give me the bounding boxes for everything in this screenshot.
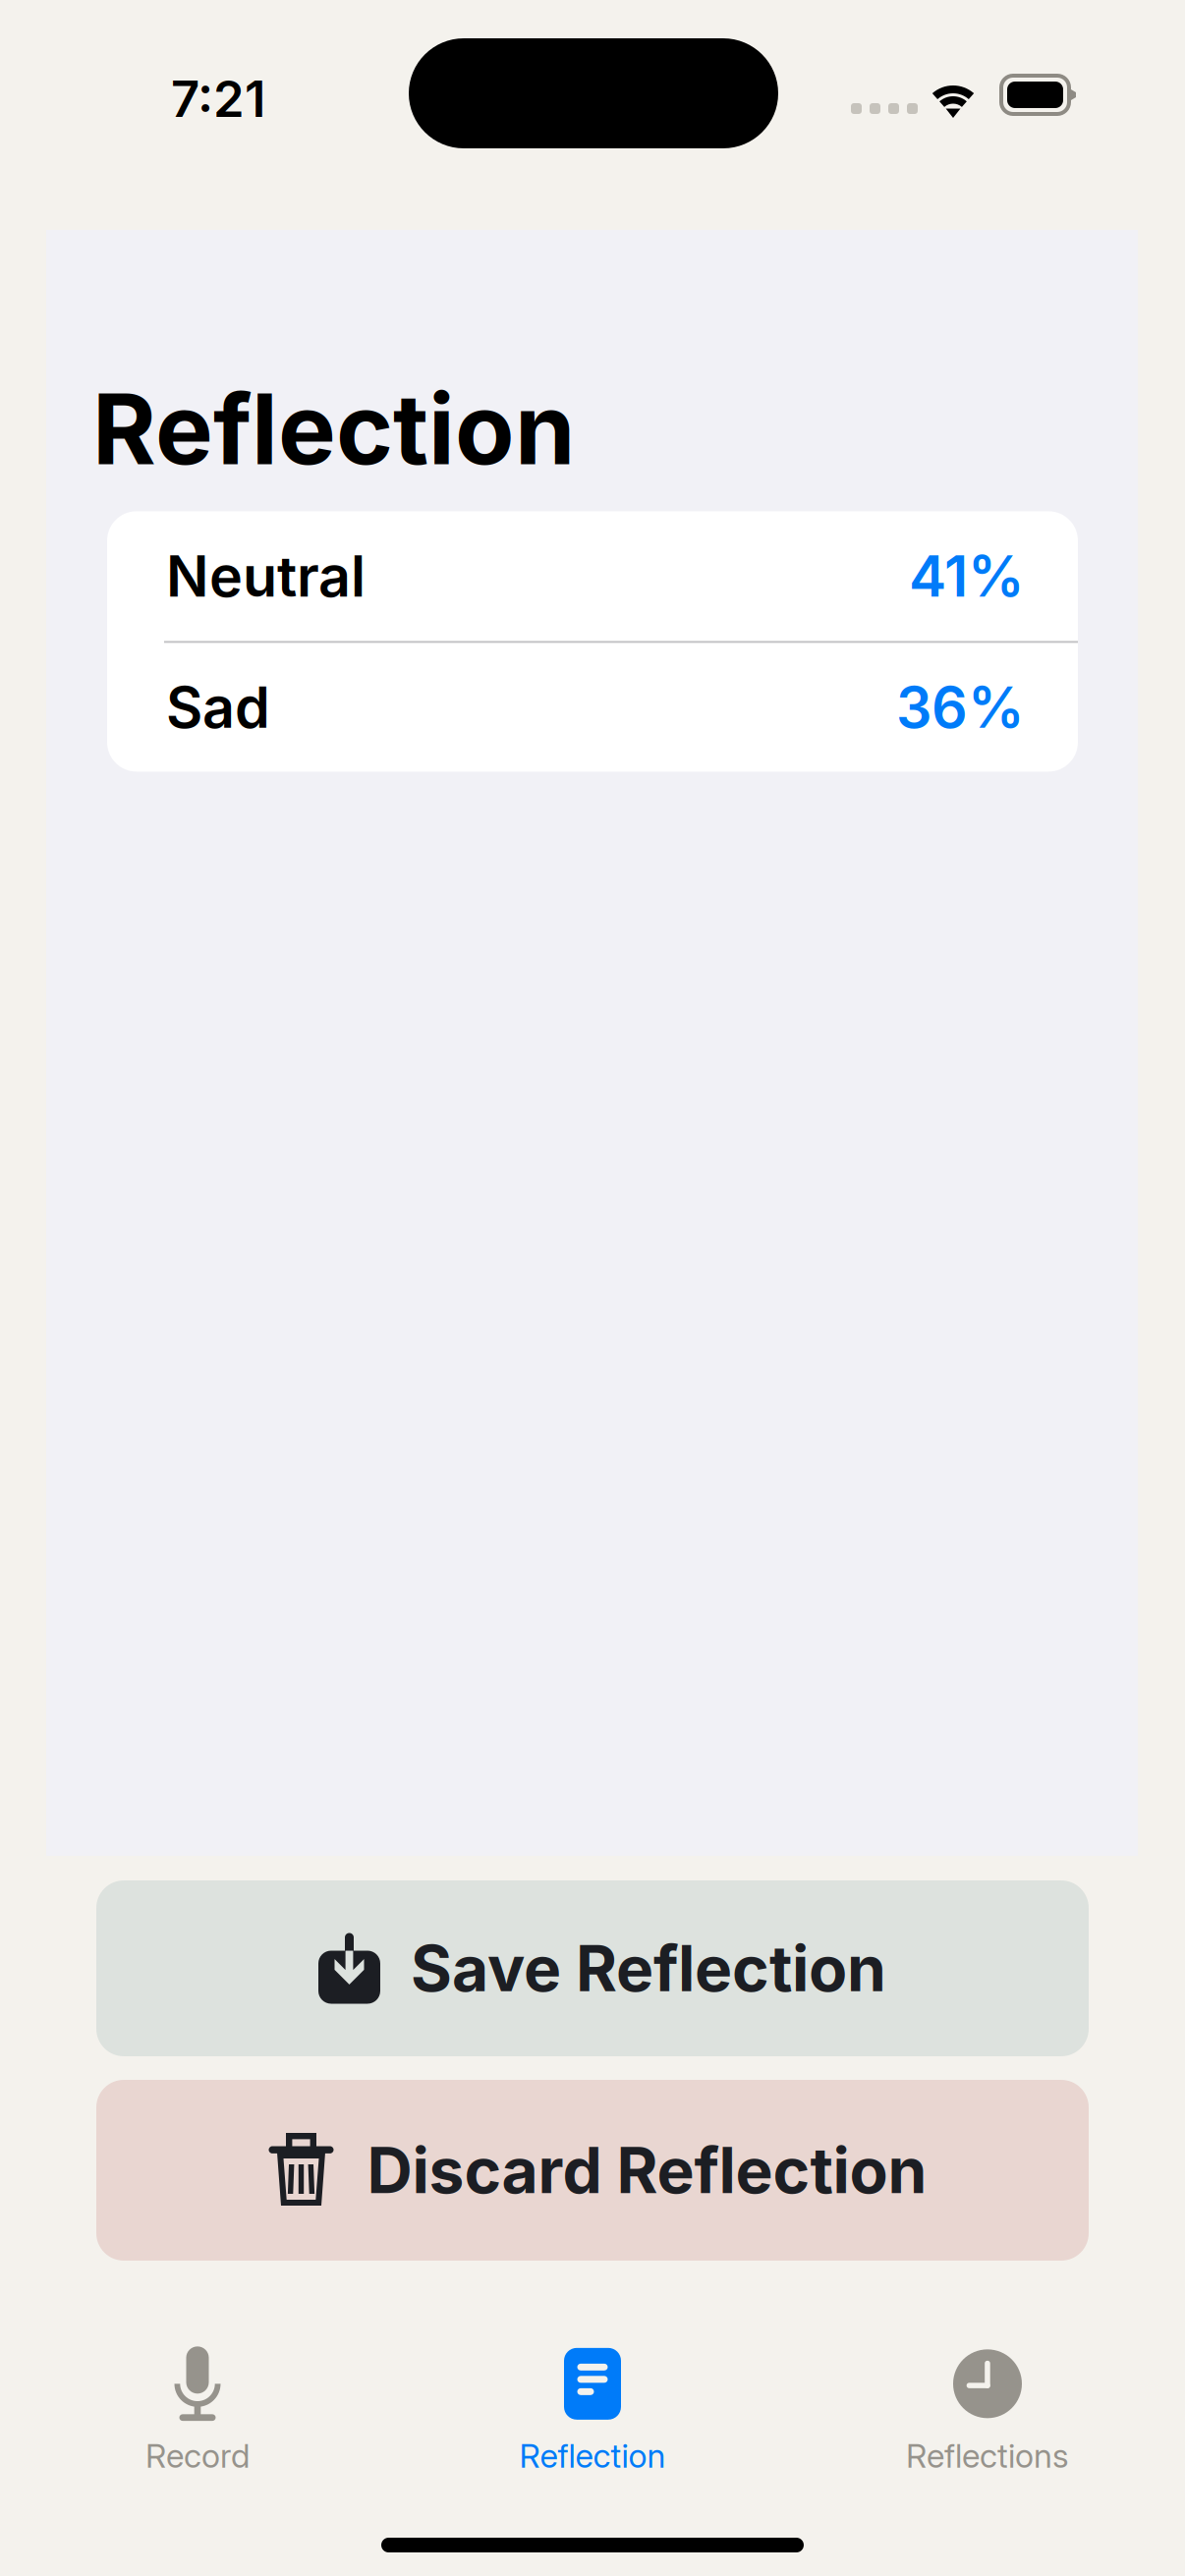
staticText: Record — [145, 2436, 250, 2475]
button[interactable]: Save Reflection — [96, 1880, 1089, 2056]
staticText: Neutral — [166, 542, 366, 610]
staticText: Reflection — [92, 370, 575, 488]
button[interactable]: Sad — [107, 643, 1078, 772]
staticText: 41% — [909, 542, 1025, 610]
button[interactable]: Discard Reflection — [96, 2080, 1089, 2261]
button[interactable]: Neutral — [107, 511, 1078, 641]
staticText: Sad — [166, 673, 270, 741]
staticText: 7:21 — [171, 69, 265, 129]
button[interactable]: Record — [0, 2341, 395, 2477]
staticText: Save Reflection — [411, 1930, 886, 2006]
staticText: 36% — [896, 673, 1025, 741]
button[interactable]: Reflections — [790, 2341, 1185, 2477]
staticText: Discard Reflection — [367, 2132, 927, 2208]
button[interactable]: Reflection — [395, 2341, 790, 2477]
staticText: Reflection — [519, 2436, 666, 2475]
staticText: Reflections — [906, 2436, 1069, 2475]
